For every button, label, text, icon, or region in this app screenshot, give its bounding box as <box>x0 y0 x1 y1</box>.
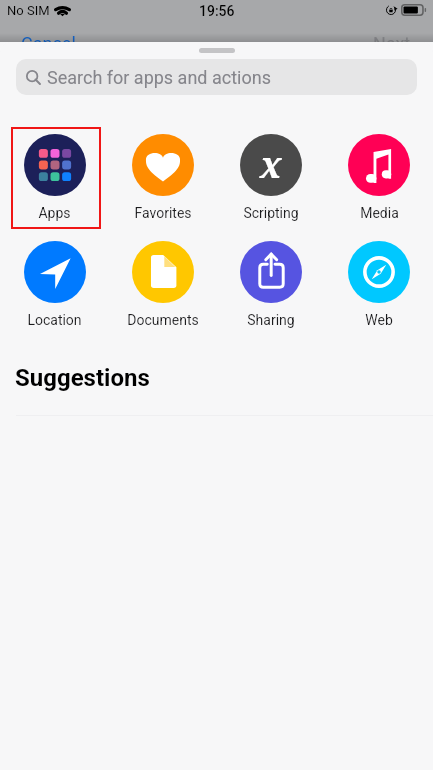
staticText: Suggestions <box>15 364 150 392</box>
other: Rotation lock <box>386 5 396 15</box>
button[interactable]: Documents <box>109 234 217 335</box>
staticText: Documents <box>127 312 199 328</box>
staticText: Favorites <box>134 205 192 221</box>
staticText: Location <box>27 312 82 328</box>
button[interactable]: Apps <box>0 127 109 228</box>
button[interactable]: Favorites <box>109 127 217 228</box>
staticText: Scripting <box>243 205 299 221</box>
button[interactable]: Location <box>0 234 109 335</box>
staticText: Apps <box>38 205 71 221</box>
button[interactable]: Cancel <box>21 33 76 54</box>
staticText: 19:56 <box>199 3 235 19</box>
staticText: x <box>260 140 282 189</box>
staticText: No SIM <box>7 3 50 18</box>
other: Battery <box>401 4 427 16</box>
button[interactable]: Next <box>373 33 411 54</box>
button[interactable]: Sharing <box>217 234 325 335</box>
button[interactable]: Web <box>325 234 433 335</box>
button[interactable]: Search for apps and actions <box>16 59 417 95</box>
staticText: Sharing <box>247 312 295 328</box>
staticText: Web <box>365 312 393 328</box>
button[interactable]: x <box>217 127 325 228</box>
staticText: Search for apps and actions <box>47 67 271 88</box>
button[interactable]: Media <box>325 127 433 228</box>
staticText: Media <box>360 205 399 221</box>
